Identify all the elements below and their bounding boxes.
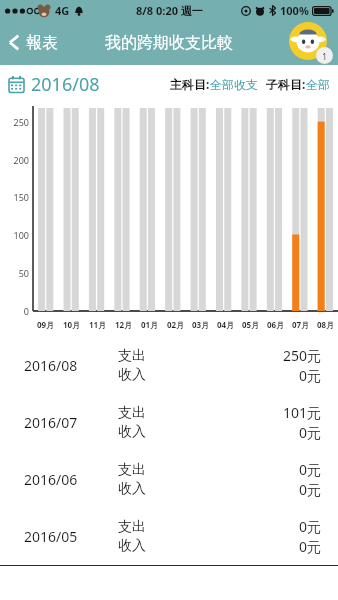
staticText: 08月 [317,319,335,330]
staticText: 02月 [167,319,185,330]
staticText: 支出 [118,347,146,365]
staticText: 100% [280,3,309,18]
button[interactable]: 2016/06 [0,451,338,508]
button[interactable]: 2016/05 [0,508,338,565]
staticText: 2016/08 [24,356,78,375]
button[interactable]: 2016/08 [0,337,338,394]
staticText: 11月 [89,319,107,330]
staticText: 0元 [299,537,322,556]
staticText: 收入 [118,423,146,441]
staticText: 01月 [141,319,159,330]
staticText: 子科目: [266,76,306,92]
button[interactable]: 報表 [0,20,70,65]
staticText: 0元 [299,460,322,479]
staticText: 12月 [115,319,133,330]
staticText: 07月 [292,319,310,330]
staticText: 250元 [283,346,322,365]
staticText: 150 [0,191,29,203]
staticText: 06月 [267,319,285,330]
staticText: 250 [0,116,29,128]
button[interactable]: 2016/08 [0,65,106,103]
staticText: 03月 [192,319,210,330]
staticText: 50 [0,267,29,279]
button[interactable]: 子科目: [266,70,330,98]
staticText: 支出 [118,461,146,479]
staticText: 05月 [242,319,260,330]
staticText: 主科目: [170,76,210,92]
staticText: 收入 [118,480,146,498]
staticText: 0元 [299,366,322,385]
button[interactable]: 主科目: [170,70,258,98]
staticText: 0元 [299,423,322,442]
button[interactable]: Profile [289,22,333,64]
staticText: 收入 [118,366,146,384]
staticText: 全部 [306,77,330,92]
staticText: 收入 [118,537,146,555]
staticText: 200 [0,154,29,166]
staticText: 0元 [299,480,322,499]
staticText: 支出 [118,518,146,536]
staticText: 8/8 0:20 週一 [136,3,203,18]
staticText: 100 [0,229,29,241]
staticText: 2016/07 [24,413,78,432]
staticText: 支出 [118,404,146,422]
staticText: 2016/08 [31,72,100,97]
staticText: 10月 [63,319,81,330]
staticText: 09月 [37,319,55,330]
staticText: 1 [322,50,328,62]
staticText: 0元 [299,517,322,536]
staticText: 2016/06 [24,470,78,489]
button[interactable]: 2016/07 [0,394,338,451]
staticText: 101元 [283,403,322,422]
staticText: 全部收支 [210,77,258,92]
staticText: 報表 [26,33,58,53]
staticText: 4G [55,3,70,18]
staticText: 0 [0,305,29,317]
staticText: 04月 [217,319,235,330]
staticText: 2016/05 [24,527,78,546]
staticText: 我的跨期收支比較 [105,33,233,53]
